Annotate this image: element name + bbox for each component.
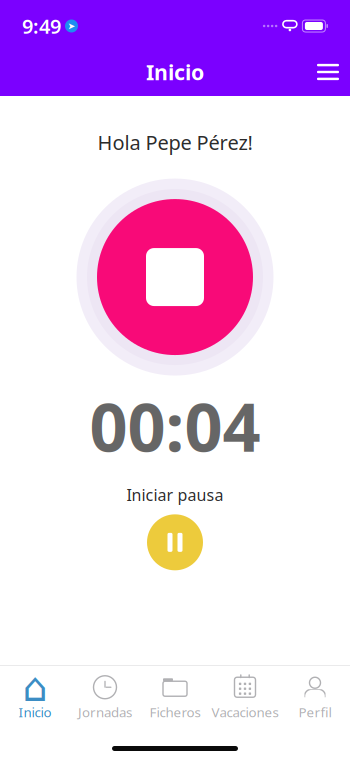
staticText: Jornadas bbox=[78, 703, 132, 721]
staticText: Iniciar pausa bbox=[126, 484, 223, 505]
button[interactable]: Detener jornada bbox=[76, 179, 273, 376]
button[interactable]: Perfil bbox=[280, 672, 350, 724]
button[interactable]: Vacaciones bbox=[210, 672, 280, 724]
staticText: 00:04 bbox=[89, 382, 260, 470]
staticText: Vacaciones bbox=[211, 703, 278, 721]
button[interactable]: Iniciar pausa bbox=[147, 514, 203, 570]
staticText: Inicio bbox=[18, 703, 51, 721]
button[interactable]: Jornadas bbox=[70, 672, 140, 724]
button[interactable]: Ficheros bbox=[140, 672, 210, 724]
staticText: ➤ bbox=[67, 21, 75, 31]
staticText: Perfil bbox=[298, 703, 331, 721]
staticText: Inicio bbox=[146, 58, 204, 86]
staticText: Hola Pepe Pérez! bbox=[97, 129, 252, 156]
staticText: Ficheros bbox=[149, 703, 200, 721]
button[interactable]: Menú bbox=[306, 50, 350, 94]
staticText: 9:49 bbox=[22, 13, 61, 39]
staticText: ⌂ bbox=[22, 664, 47, 710]
button[interactable]: ⌂ bbox=[0, 672, 70, 724]
